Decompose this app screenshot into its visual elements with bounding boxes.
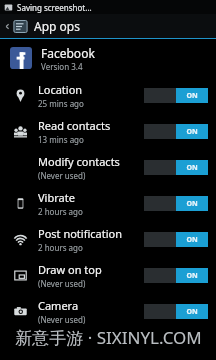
button[interactable]: Camera: [0, 293, 216, 329]
button[interactable]: Toggle permission: [144, 124, 208, 139]
staticText: Read contacts: [38, 118, 111, 133]
button[interactable]: Draw on top: [0, 257, 216, 293]
button[interactable]: Vibrate: [0, 185, 216, 221]
button[interactable]: Post notification: [0, 221, 216, 257]
staticText: Location: [38, 82, 83, 97]
staticText: Saving screenshot...: [17, 2, 92, 13]
staticText: Post notification: [38, 226, 123, 241]
button[interactable]: Toggle permission: [144, 88, 208, 103]
staticText: ON: [186, 127, 198, 137]
staticText: ON: [186, 163, 198, 173]
staticText: 25 mins ago: [38, 98, 84, 109]
staticText: ON: [186, 271, 198, 281]
staticText: 新意手游 · SIXINYL.COM: [15, 326, 202, 349]
staticText: Version 3.4: [41, 61, 83, 72]
staticText: 2 hours ago: [38, 206, 83, 217]
button[interactable]: Navigate up: [0, 14, 30, 38]
staticText: Draw on top: [38, 262, 102, 277]
staticText: Facebook: [41, 45, 95, 61]
staticText: (Never used): [38, 314, 86, 325]
staticText: 13 mins ago: [38, 134, 84, 145]
staticText: ON: [186, 307, 198, 317]
button[interactable]: Read contacts: [0, 113, 216, 149]
staticText: Camera: [38, 298, 79, 313]
staticText: ON: [186, 199, 198, 209]
staticText: 2 hours ago: [38, 242, 83, 253]
button[interactable]: Toggle permission: [144, 196, 208, 211]
staticText: (Never used): [38, 170, 86, 181]
staticText: ON: [186, 235, 198, 245]
button[interactable]: Location: [0, 77, 216, 113]
button[interactable]: Toggle permission: [144, 232, 208, 247]
button[interactable]: Toggle permission: [144, 160, 208, 175]
button[interactable]: Facebook: [0, 39, 216, 77]
staticText: Modify contacts: [38, 154, 120, 169]
button[interactable]: Toggle permission: [144, 304, 208, 319]
button[interactable]: Toggle permission: [144, 268, 208, 283]
staticText: Vibrate: [38, 190, 75, 205]
staticText: App ops: [34, 18, 80, 34]
button[interactable]: Modify contacts: [0, 149, 216, 185]
staticText: ON: [186, 91, 198, 101]
staticText: (Never used): [38, 278, 86, 289]
